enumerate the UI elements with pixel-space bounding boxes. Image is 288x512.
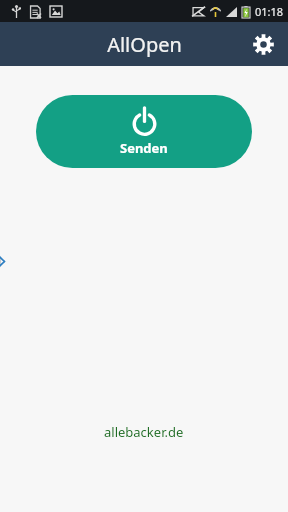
button[interactable]: Senden xyxy=(36,95,252,168)
staticText: 01:18 xyxy=(255,4,284,19)
staticText: allebacker.de xyxy=(104,423,184,441)
button[interactable]: allebacker.de xyxy=(98,420,190,444)
staticText: AllOpen xyxy=(107,31,182,58)
staticText: Senden xyxy=(120,139,168,157)
button[interactable]: Settings xyxy=(246,27,280,61)
button[interactable]: Open drawer xyxy=(0,240,11,283)
